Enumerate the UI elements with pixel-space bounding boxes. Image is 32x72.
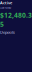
staticText: $12,480.35 xyxy=(0,11,32,29)
staticText: Active xyxy=(0,0,12,5)
staticText: Overview xyxy=(0,6,11,10)
staticText: Deposits xyxy=(0,30,15,35)
